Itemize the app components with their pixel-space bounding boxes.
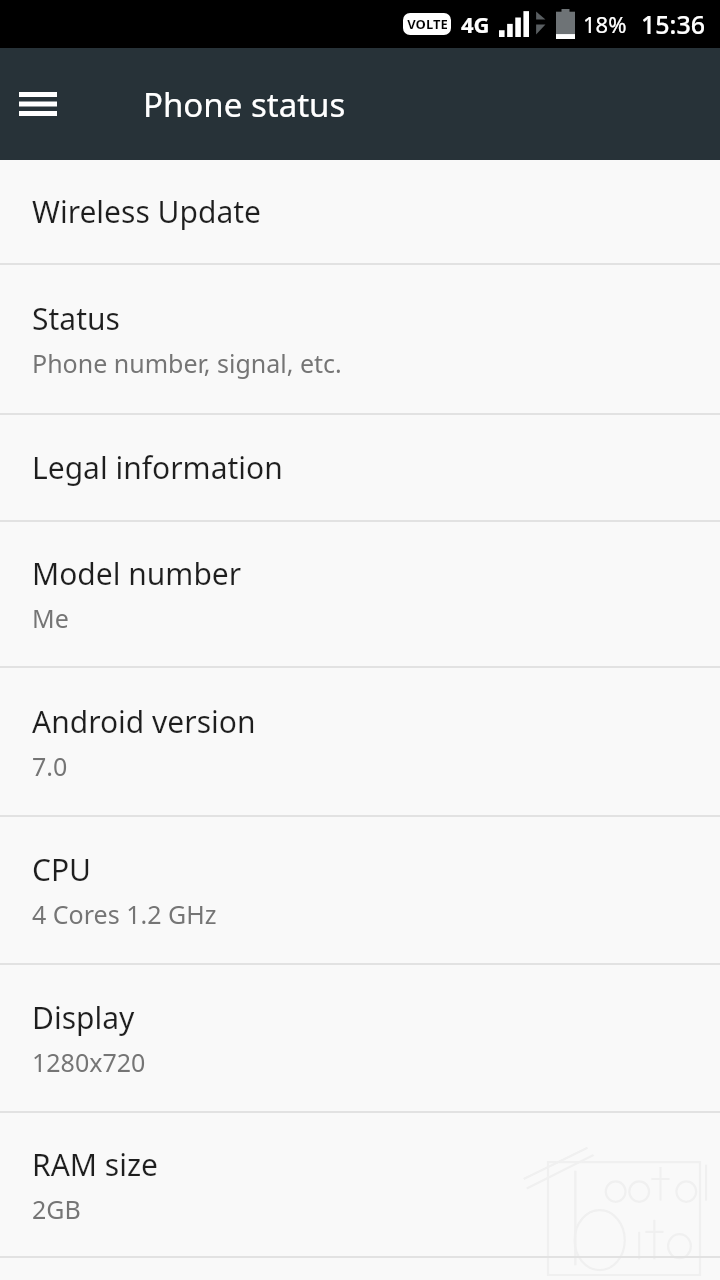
other: Signal strength xyxy=(499,11,529,37)
button[interactable]: Wireless Update xyxy=(0,160,720,265)
button[interactable]: Model number xyxy=(0,522,720,668)
staticText: Phone number, signal, etc. xyxy=(32,346,342,380)
staticText: 18% xyxy=(583,9,627,39)
staticText: CPU xyxy=(32,849,92,890)
staticText: RAM size xyxy=(32,1144,158,1185)
button[interactable]: Android version xyxy=(0,668,720,817)
button[interactable]: RAM size xyxy=(0,1113,720,1258)
staticText: VOLTE xyxy=(407,15,448,33)
staticText: 4G xyxy=(461,9,490,39)
button[interactable]: Status xyxy=(0,265,720,415)
staticText: 4 Cores 1.2 GHz xyxy=(32,897,217,931)
staticText: Display xyxy=(32,997,135,1038)
staticText: Status xyxy=(32,298,120,339)
button[interactable]: Display xyxy=(0,965,720,1113)
staticText: Phone status xyxy=(143,82,346,127)
staticText: Model number xyxy=(32,553,242,594)
button[interactable]: Legal information xyxy=(0,415,720,522)
staticText: 2GB xyxy=(32,1192,81,1226)
button[interactable]: Open navigation menu xyxy=(10,76,66,132)
staticText: 1280x720 xyxy=(32,1045,146,1079)
staticText: Legal information xyxy=(32,447,283,488)
staticText: 7.0 xyxy=(32,749,68,783)
button[interactable]: CPU xyxy=(0,817,720,965)
staticText: 15:36 xyxy=(641,7,706,41)
other: Battery 18 percent xyxy=(556,9,575,39)
staticText: Me xyxy=(32,601,69,635)
staticText: Android version xyxy=(32,701,256,742)
staticText: Wireless Update xyxy=(32,191,261,232)
